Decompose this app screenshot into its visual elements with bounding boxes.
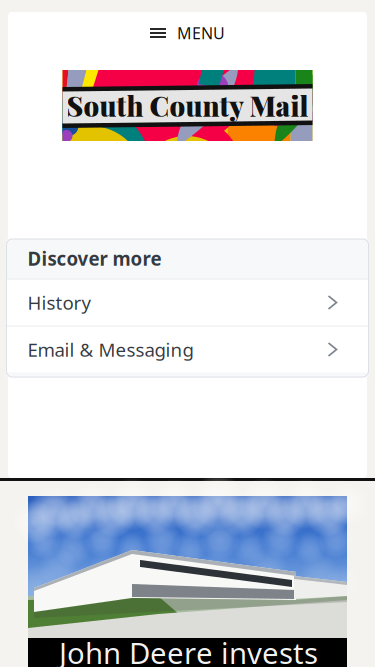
staticText: John Deere invests: [59, 633, 318, 667]
staticText: Email & Messaging: [27, 337, 193, 362]
staticText: MENU: [177, 22, 225, 44]
button[interactable]: History: [6, 279, 368, 325]
staticText: Discover more: [27, 246, 161, 271]
staticText: South County Mail: [66, 87, 308, 124]
staticText: History: [27, 290, 91, 315]
button[interactable]: John Deere invests: [28, 496, 347, 667]
button[interactable]: MENU: [144, 12, 231, 54]
button[interactable]: Email & Messaging: [6, 326, 368, 372]
